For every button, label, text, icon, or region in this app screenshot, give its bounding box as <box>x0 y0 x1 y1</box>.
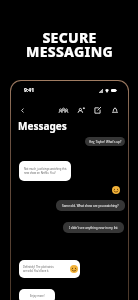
button[interactable]: Not much, just binge-watching this new s… <box>19 161 71 181</box>
button[interactable]: Same old. What show are you watching? <box>56 200 125 211</box>
staticText: I didn't see anything new in my list <box>69 226 118 230</box>
staticText: Same old. What show are you watching? <box>62 204 119 208</box>
button[interactable]: Back <box>18 106 27 115</box>
staticText: Not much, just binge-watching this new s… <box>24 167 67 175</box>
staticText: 9:41 <box>24 87 34 94</box>
staticText: Enjoy more! <box>30 294 45 298</box>
staticText: Hey, Taylor! What's up? <box>89 140 122 144</box>
staticText: Messages <box>18 119 67 133</box>
button[interactable]: I didn't see anything new in my list <box>63 222 124 233</box>
button[interactable]: Enjoy more! <box>19 289 55 300</box>
staticText: SECURE <box>42 28 97 47</box>
button[interactable]: Definitely! The plot twists are wild. Yo… <box>19 260 80 278</box>
button[interactable]: Notifications <box>110 106 119 115</box>
button[interactable]: Add contact <box>76 106 85 115</box>
staticText: MESSAGING <box>26 42 113 61</box>
button[interactable]: New message <box>93 106 102 115</box>
button[interactable]: Groups <box>59 106 68 115</box>
staticText: Definitely! The plot twists are wild. Yo… <box>23 265 54 273</box>
button[interactable]: Hey, Taylor! What's up? <box>85 137 125 146</box>
